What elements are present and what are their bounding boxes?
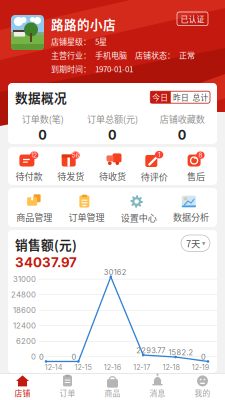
staticText: 总计 xyxy=(192,92,208,103)
staticText: 6200 xyxy=(16,337,36,346)
staticText: 12-18 xyxy=(162,363,179,372)
staticText: 今日 xyxy=(152,92,168,103)
staticText: 待付款 xyxy=(15,169,42,183)
staticText: 待发货 xyxy=(57,169,84,183)
staticText: 到期时间： 1970-01-01 xyxy=(51,63,133,74)
staticText: 1 xyxy=(158,151,160,158)
button[interactable]: 已认证 xyxy=(177,12,208,26)
staticText: 1582.2 xyxy=(169,348,194,357)
staticText: 12-14 xyxy=(45,363,63,372)
staticText: 12400 xyxy=(13,321,36,330)
button[interactable]: 我的 xyxy=(180,375,225,399)
button[interactable]: 昨日 xyxy=(171,91,191,103)
staticText: 待收货 xyxy=(99,169,126,183)
button[interactable]: 8 xyxy=(175,151,217,183)
button[interactable]: 订单管理 xyxy=(60,192,112,224)
staticText: 设置中心 xyxy=(121,211,157,224)
staticText: 0 xyxy=(31,352,36,361)
staticText: 56 xyxy=(71,151,79,159)
staticText: 30162 xyxy=(104,268,127,277)
staticText: 0 xyxy=(178,127,187,143)
button[interactable]: 今日 xyxy=(150,91,170,103)
staticText: 待评价 xyxy=(141,170,168,183)
button[interactable]: 订单 xyxy=(45,375,90,399)
staticText: 数据概况 xyxy=(15,88,67,106)
button[interactable]: 店铺 xyxy=(0,375,45,399)
staticText: 售后 xyxy=(187,169,205,183)
staticText: 12 xyxy=(31,151,37,159)
button[interactable]: 总计 xyxy=(191,91,210,103)
staticText: 订单数(笔) xyxy=(22,112,64,125)
button[interactable]: 设置中心 xyxy=(112,192,165,224)
button[interactable]: 7天 xyxy=(181,235,210,251)
button[interactable]: 商品 xyxy=(90,375,135,399)
staticText: 店铺收藏数 xyxy=(160,112,205,125)
staticText: 31000 xyxy=(13,274,36,284)
staticText: 订单 xyxy=(59,387,75,399)
staticText: 0 xyxy=(108,127,117,143)
staticText: 12-17 xyxy=(133,363,150,372)
staticText: 0 xyxy=(39,352,44,361)
staticText: 主营行业： 手机电脑 xyxy=(51,49,127,61)
staticText: 消息 xyxy=(149,387,165,399)
staticText: 数据分析 xyxy=(173,210,209,223)
button[interactable]: 56 xyxy=(50,151,92,183)
staticText: 销售额(元) xyxy=(15,235,77,253)
staticText: 路路的小店 xyxy=(51,15,116,33)
staticText: 12-19 xyxy=(192,363,209,372)
staticText: 昨日 xyxy=(173,92,189,103)
staticText: 7天 xyxy=(186,236,200,250)
button[interactable]: 商品管理 xyxy=(8,192,60,224)
staticText: 商品 xyxy=(104,387,120,399)
staticText: 店铺状态： 正常 xyxy=(135,49,195,61)
staticText: 店铺星级： 5星 xyxy=(51,35,107,47)
staticText: 24800 xyxy=(11,290,36,299)
staticText: 8 xyxy=(198,151,202,159)
button[interactable]: 数据分析 xyxy=(165,193,217,223)
staticText: 商品管理 xyxy=(16,210,52,224)
staticText: 订单管理 xyxy=(68,210,104,224)
staticText: 0 xyxy=(201,352,206,361)
staticText: ▾ xyxy=(202,239,205,247)
staticText: 12-16 xyxy=(104,363,121,372)
button[interactable]: 12 xyxy=(8,151,50,183)
staticText: 0 xyxy=(71,352,76,361)
button[interactable]: 消息 xyxy=(135,375,180,399)
staticText: 0 xyxy=(38,127,47,143)
staticText: 2293.77 xyxy=(136,346,165,355)
staticText: 34037.97 xyxy=(15,254,77,270)
staticText: 12-15 xyxy=(74,363,91,372)
staticText: 我的 xyxy=(194,387,210,399)
button[interactable]: 待收货 xyxy=(92,151,133,183)
staticText: 店铺 xyxy=(14,387,30,399)
staticText: 18600 xyxy=(13,305,36,315)
staticText: 订单总额(元) xyxy=(87,112,138,125)
button[interactable]: 1 xyxy=(133,151,175,183)
staticText: 已认证 xyxy=(180,13,204,25)
